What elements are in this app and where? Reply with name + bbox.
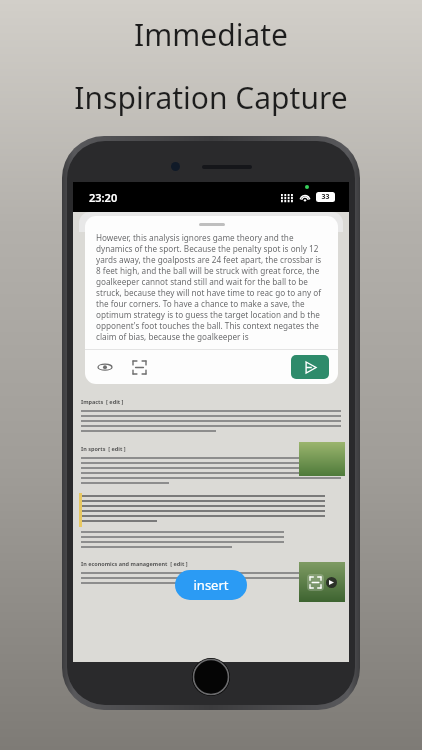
button[interactable]: Close xyxy=(311,248,337,274)
staticText: Immediate xyxy=(134,14,288,55)
staticText: In sports [ edit ] xyxy=(81,445,126,452)
staticText: Impacts [ edit ] xyxy=(81,398,124,405)
staticText: Inspiration Capture xyxy=(74,77,348,118)
staticText: 33 xyxy=(321,192,330,202)
button[interactable]: insert xyxy=(175,570,247,600)
button[interactable]: Preview xyxy=(94,356,116,378)
staticText: insert xyxy=(193,576,229,594)
button[interactable]: Scan xyxy=(128,356,150,378)
staticText: 23:20 xyxy=(89,190,118,205)
button[interactable]: Home xyxy=(192,658,230,696)
staticText: However, this analysis ignores game theo… xyxy=(96,232,327,342)
staticText: In economics and management [ edit ] xyxy=(81,560,188,567)
button[interactable]: Send xyxy=(291,355,329,379)
